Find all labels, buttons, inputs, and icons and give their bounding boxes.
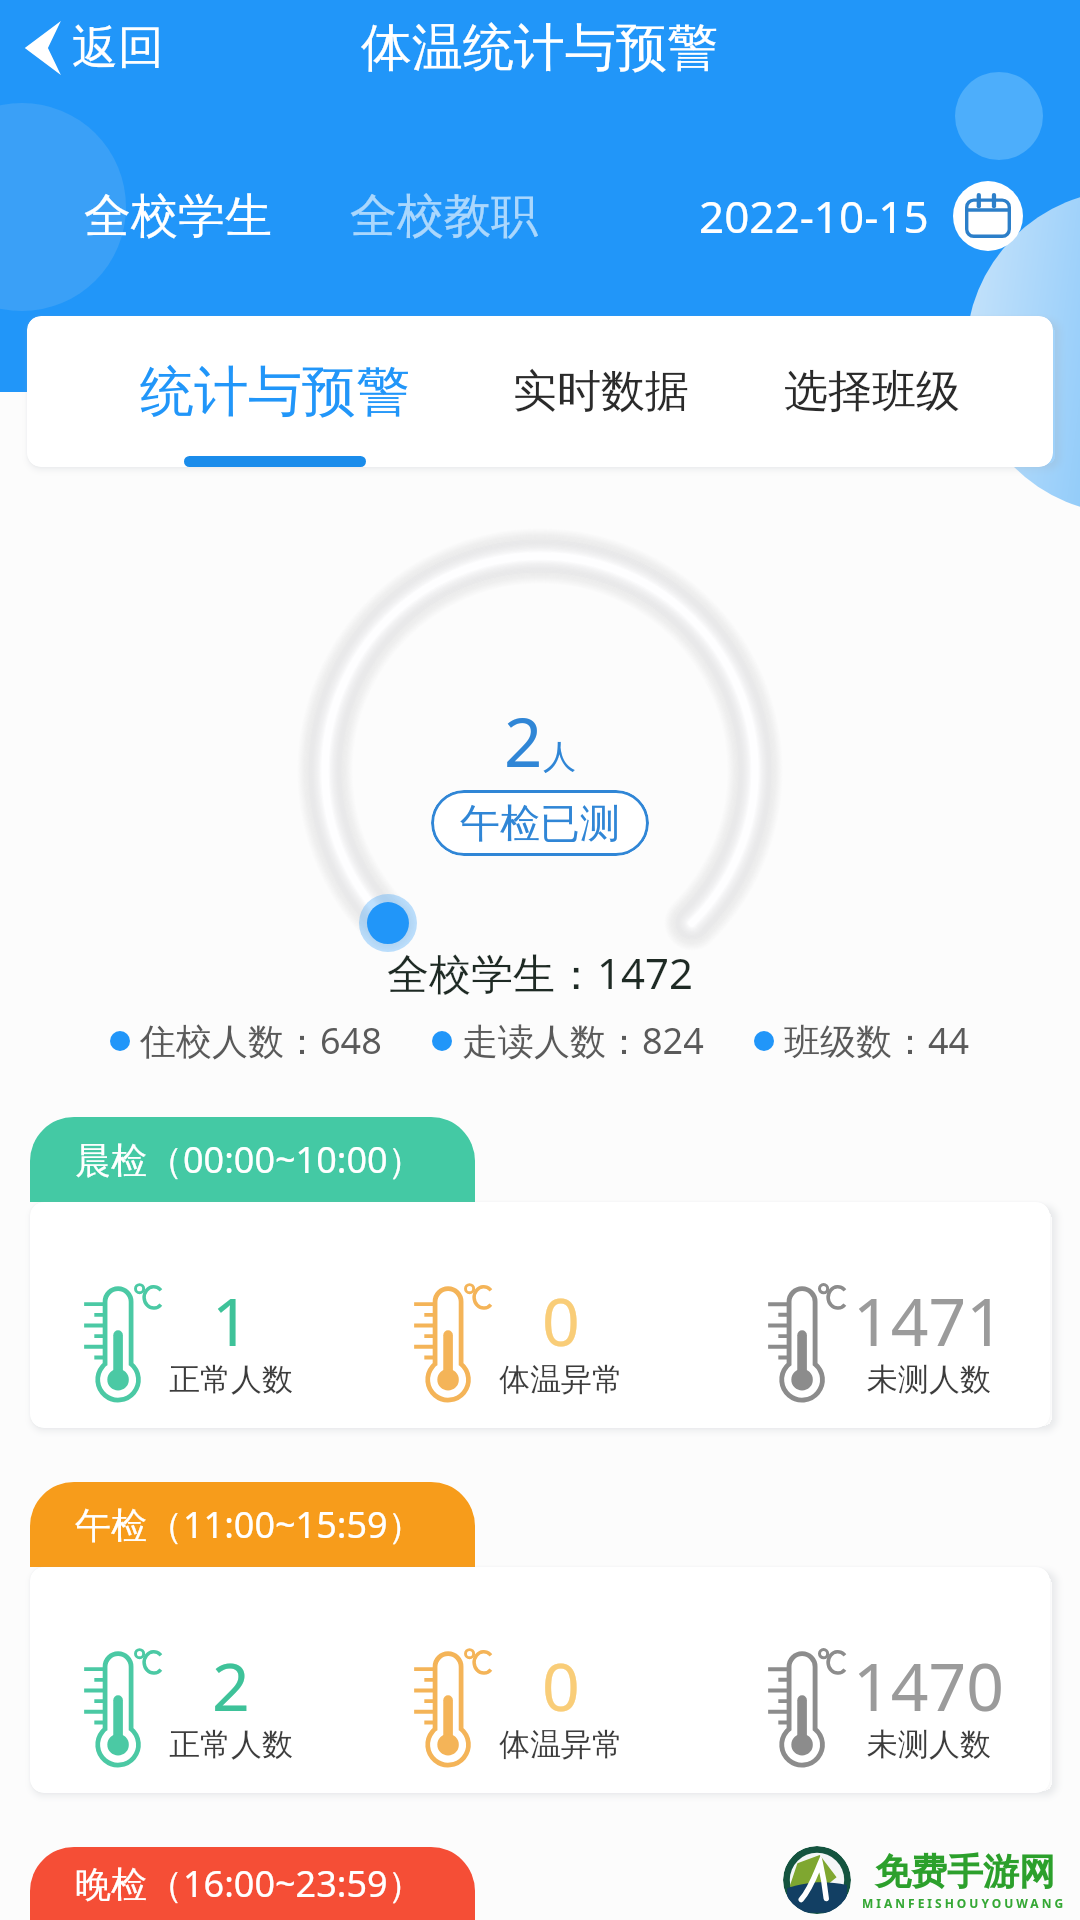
- staticText: 选择班级: [784, 364, 960, 419]
- button[interactable]: 选择班级: [747, 316, 997, 467]
- staticText: 2: [504, 695, 543, 786]
- staticText: 未测人数: [867, 1725, 991, 1764]
- staticText: 晚检（16:00~23:59）: [75, 1859, 424, 1908]
- button[interactable]: 午检（11:00~15:59）: [30, 1482, 475, 1567]
- staticText: 走读人数：824: [462, 1016, 704, 1065]
- staticText: 全校学生：1472: [387, 944, 694, 1001]
- staticText: 免费手游网: [875, 1849, 1055, 1894]
- button[interactable]: 午检已测: [431, 790, 649, 856]
- button[interactable]: 选择日期: [953, 181, 1023, 251]
- staticText: 1470: [853, 1640, 1005, 1730]
- staticText: MIANFEISHOUYOUWANG: [862, 1895, 1067, 1911]
- staticText: 人: [543, 736, 576, 778]
- staticText: 体温异常: [499, 1725, 623, 1764]
- staticText: 统计与预警: [140, 358, 410, 426]
- staticText: 晨检（00:00~10:00）: [75, 1135, 424, 1184]
- staticText: 正常人数: [169, 1360, 293, 1399]
- staticText: 0: [542, 1640, 580, 1730]
- staticText: 2: [212, 1640, 250, 1730]
- button[interactable]: 全校教职: [350, 187, 538, 246]
- staticText: 0: [542, 1275, 580, 1365]
- staticText: 2022-10-15: [699, 186, 929, 246]
- staticText: 实时数据: [513, 364, 689, 419]
- staticText: 1471: [853, 1275, 1005, 1365]
- staticText: 体温统计与预警: [361, 16, 718, 80]
- staticText: 返回: [72, 19, 164, 77]
- staticText: 午检（11:00~15:59）: [75, 1500, 424, 1549]
- button[interactable]: 全校学生: [84, 187, 272, 246]
- staticText: 正常人数: [169, 1725, 293, 1764]
- staticText: 住校人数：648: [140, 1016, 382, 1065]
- staticText: 1: [212, 1275, 250, 1365]
- button[interactable]: 晚检（16:00~23:59）: [30, 1847, 475, 1920]
- staticText: 午检已测: [460, 798, 620, 848]
- staticText: 班级数：44: [784, 1016, 970, 1065]
- button[interactable]: 晨检（00:00~10:00）: [30, 1117, 475, 1202]
- button[interactable]: 统计与预警: [119, 316, 431, 467]
- staticText: 未测人数: [867, 1360, 991, 1399]
- button[interactable]: 实时数据: [476, 316, 726, 467]
- button[interactable]: 返回: [24, 19, 164, 77]
- staticText: 体温异常: [499, 1360, 623, 1399]
